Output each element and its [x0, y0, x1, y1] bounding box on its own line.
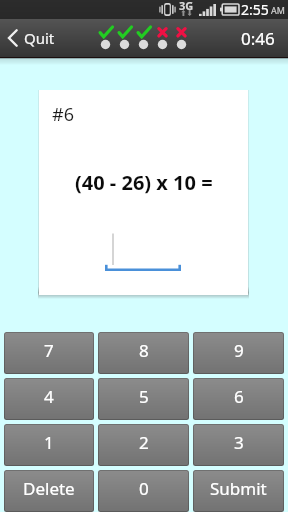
staticText: Submit: [210, 477, 267, 500]
staticText: 8: [139, 339, 149, 362]
staticText: 0: [139, 477, 149, 500]
staticText: AM: [271, 4, 285, 16]
button[interactable]: 9: [193, 332, 284, 374]
staticText: Delete: [23, 477, 75, 500]
staticText: (40 - 26) x 10 =: [75, 169, 213, 196]
button[interactable]: 8: [98, 332, 189, 374]
button[interactable]: 7: [4, 332, 94, 374]
staticText: 0:46: [241, 27, 275, 50]
staticText: 6: [234, 385, 244, 408]
button[interactable]: Submit: [193, 470, 284, 512]
button[interactable]: 0: [98, 470, 189, 512]
button[interactable]: 5: [98, 378, 189, 420]
staticText: #6: [52, 102, 74, 127]
staticText: 3: [234, 431, 244, 454]
button[interactable]: 6: [193, 378, 284, 420]
staticText: 2:55: [241, 0, 269, 19]
staticText: 9: [234, 339, 244, 362]
staticText: Quit: [24, 28, 55, 48]
staticText: 3G: [179, 0, 194, 13]
button[interactable]: 4: [4, 378, 94, 420]
other: Back: [7, 29, 18, 47]
button[interactable]: 1: [4, 424, 94, 466]
staticText: 1: [44, 431, 54, 454]
staticText: 2: [139, 431, 149, 454]
button[interactable]: 2: [98, 424, 189, 466]
staticText: 7: [44, 339, 54, 362]
staticText: 5: [139, 385, 149, 408]
button[interactable]: 3: [193, 424, 284, 466]
button[interactable]: Delete: [4, 470, 94, 512]
button[interactable]: Back: [0, 28, 63, 48]
staticText: 4: [44, 385, 54, 408]
